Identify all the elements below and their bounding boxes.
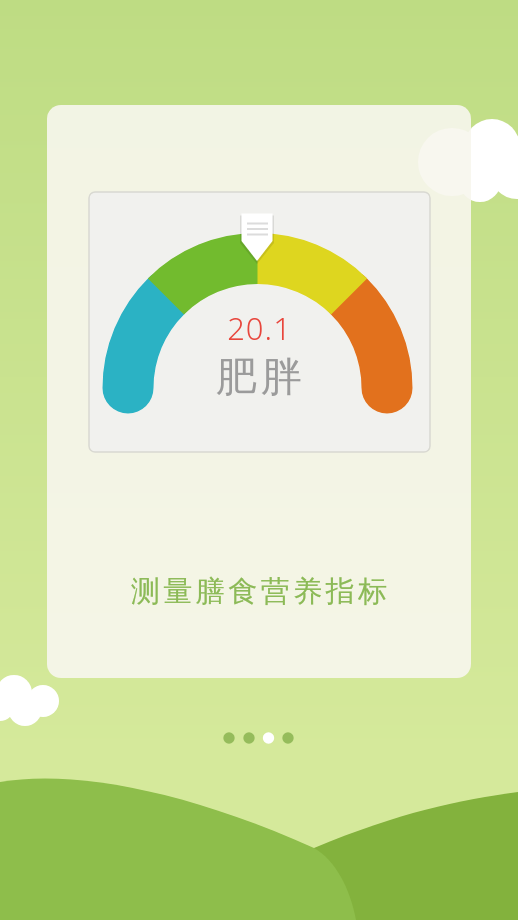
button[interactable]: 20.1 xyxy=(47,105,471,678)
button[interactable] xyxy=(218,727,300,749)
staticText: 测量膳食营养指标 xyxy=(129,573,389,610)
staticText: 肥胖 xyxy=(214,352,304,404)
staticText: 20.1 xyxy=(227,307,292,349)
